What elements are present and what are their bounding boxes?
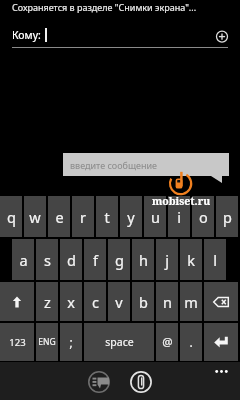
button[interactable]: t <box>96 196 118 237</box>
staticText: c <box>92 292 99 312</box>
button[interactable]: m <box>180 282 202 321</box>
button[interactable]: Send message <box>88 371 110 393</box>
staticText: s <box>44 250 51 270</box>
staticText: d <box>67 250 76 270</box>
button[interactable]: введите сообщение <box>63 153 229 183</box>
staticText: z <box>44 292 51 312</box>
button[interactable]: h <box>132 239 154 280</box>
staticText: t <box>104 207 110 227</box>
staticText: n <box>163 292 172 312</box>
staticText: space <box>105 335 134 349</box>
button[interactable]: ENG <box>36 323 58 361</box>
button[interactable]: x <box>60 282 82 321</box>
staticText: y <box>127 207 135 227</box>
staticText: u <box>151 207 160 227</box>
button[interactable]: r <box>72 196 94 237</box>
button[interactable]: k <box>180 239 202 280</box>
button[interactable]: o <box>192 196 214 237</box>
button[interactable]: Attach file <box>130 371 152 393</box>
button[interactable]: Add recipient <box>214 29 230 45</box>
staticText: h <box>139 250 148 270</box>
button[interactable]: ; <box>60 323 82 361</box>
button[interactable]: Backspace <box>204 282 238 321</box>
staticText: l <box>213 250 217 270</box>
staticText: g <box>115 250 124 270</box>
button[interactable]: f <box>84 239 106 280</box>
button[interactable]: More options <box>209 359 234 384</box>
button[interactable]: u <box>144 196 166 237</box>
staticText: ENG <box>38 336 56 348</box>
button[interactable]: i <box>168 196 190 237</box>
staticText: m <box>184 292 198 312</box>
staticText: f <box>93 250 98 270</box>
button[interactable]: z <box>36 282 58 321</box>
button[interactable]: e <box>48 196 70 237</box>
staticText: введите сообщение <box>70 159 157 171</box>
button[interactable]: Shift <box>0 282 34 321</box>
staticText: a <box>19 250 28 270</box>
staticText: . <box>189 334 193 350</box>
staticText: 123 <box>9 336 26 349</box>
staticText: Сохраняется в разделе "Снимки экрана"... <box>12 1 197 13</box>
button[interactable]: j <box>156 239 178 280</box>
staticText: p <box>223 207 232 227</box>
button[interactable]: v <box>108 282 130 321</box>
button[interactable]: g <box>108 239 130 280</box>
button[interactable]: c <box>84 282 106 321</box>
staticText: o <box>199 207 208 227</box>
button[interactable]: 123 <box>0 323 34 361</box>
staticText: k <box>187 250 195 270</box>
staticText: e <box>55 207 64 227</box>
staticText: Кому: <box>12 28 41 42</box>
button[interactable]: l <box>204 239 226 280</box>
button[interactable]: d <box>60 239 82 280</box>
staticText: mobiset.ru <box>152 194 211 208</box>
button[interactable]: n <box>156 282 178 321</box>
staticText: r <box>80 207 86 227</box>
staticText: q <box>7 207 16 227</box>
button[interactable]: @ <box>156 323 178 361</box>
staticText: w <box>29 207 41 227</box>
staticText: j <box>165 250 169 270</box>
staticText: x <box>67 292 75 312</box>
button[interactable]: b <box>132 282 154 321</box>
button[interactable]: Кому: <box>0 23 240 47</box>
staticText: b <box>139 292 148 312</box>
staticText: ; <box>69 334 73 350</box>
staticText: v <box>115 292 123 312</box>
button[interactable]: space <box>84 323 154 361</box>
button[interactable]: Enter <box>204 323 238 361</box>
button[interactable]: y <box>120 196 142 237</box>
button[interactable]: p <box>216 196 238 237</box>
staticText: @ <box>162 334 173 350</box>
button[interactable]: w <box>24 196 46 237</box>
button[interactable]: . <box>180 323 202 361</box>
button[interactable]: a <box>12 239 34 280</box>
button[interactable]: s <box>36 239 58 280</box>
staticText: i <box>177 207 181 227</box>
button[interactable]: q <box>0 196 22 237</box>
